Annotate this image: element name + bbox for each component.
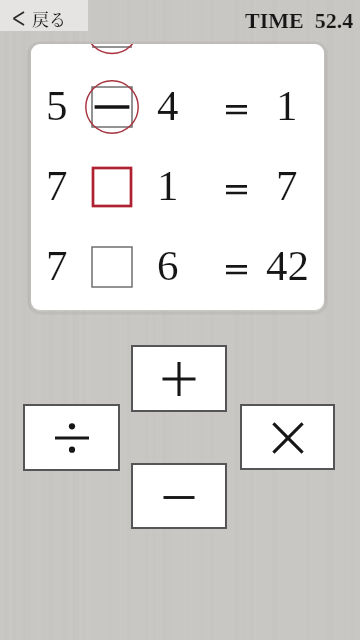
staticText: 6 — [157, 242, 179, 290]
staticText: 1 — [276, 82, 298, 130]
staticText: 7 — [276, 162, 298, 210]
button[interactable]: Plus — [133, 347, 225, 410]
button[interactable]: Multiply — [242, 406, 333, 468]
staticText: TIME 52.4 — [245, 8, 354, 32]
staticText: 戻る — [32, 6, 66, 30]
staticText: 7 — [46, 162, 68, 210]
staticText: 4 — [157, 82, 179, 130]
button[interactable]: Divide — [25, 406, 118, 469]
staticText: 1 — [157, 162, 179, 210]
staticText: 7 — [46, 242, 68, 290]
button[interactable]: Minus — [133, 465, 225, 527]
staticText: 42 — [266, 242, 309, 290]
button[interactable]: 戻る — [0, 0, 88, 31]
staticText: 5 — [46, 82, 68, 130]
